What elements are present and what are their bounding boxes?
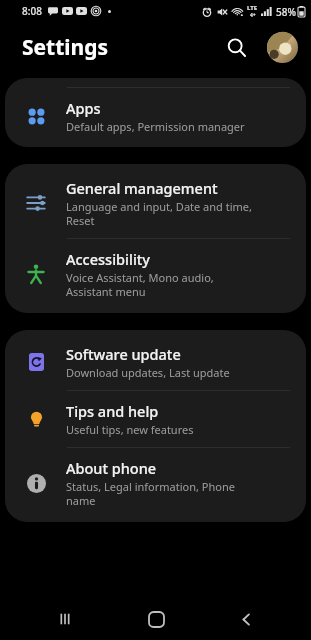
button[interactable]: Account profile (265, 30, 299, 64)
staticText: Download updates, Last update (66, 365, 230, 380)
staticText: 8:08 (22, 4, 42, 18)
staticText: Software update (66, 344, 181, 364)
staticText: Settings (22, 33, 109, 62)
staticText: Apps (66, 98, 101, 118)
button[interactable]: Back (220, 598, 272, 640)
staticText: 58% (276, 5, 296, 19)
button[interactable]: General management (5, 168, 306, 238)
staticText: Default apps, Permission manager (66, 119, 245, 134)
staticText: Tips and help (66, 401, 159, 421)
button[interactable]: Tips and help (5, 391, 306, 447)
staticText: Accessibility (66, 249, 151, 269)
button[interactable]: Accessibility (5, 239, 306, 309)
staticText: About phone (66, 458, 157, 478)
staticText: Language and input, Date and time, Reset (66, 199, 252, 228)
staticText: General management (66, 178, 218, 198)
staticText: Status, Legal information, Phone name (66, 479, 235, 508)
button[interactable]: Recent apps (39, 598, 91, 640)
staticText: Useful tips, new features (66, 422, 194, 437)
staticText: 4+ (250, 12, 256, 19)
button[interactable]: Apps (5, 88, 306, 144)
staticText: Voice Assistant, Mono audio, Assistant m… (66, 270, 214, 299)
button[interactable]: Home (130, 598, 182, 640)
staticText: LTE (247, 4, 258, 12)
button[interactable]: About phone (5, 448, 306, 518)
button[interactable]: Search (219, 30, 253, 64)
button[interactable]: Software update (5, 334, 306, 390)
